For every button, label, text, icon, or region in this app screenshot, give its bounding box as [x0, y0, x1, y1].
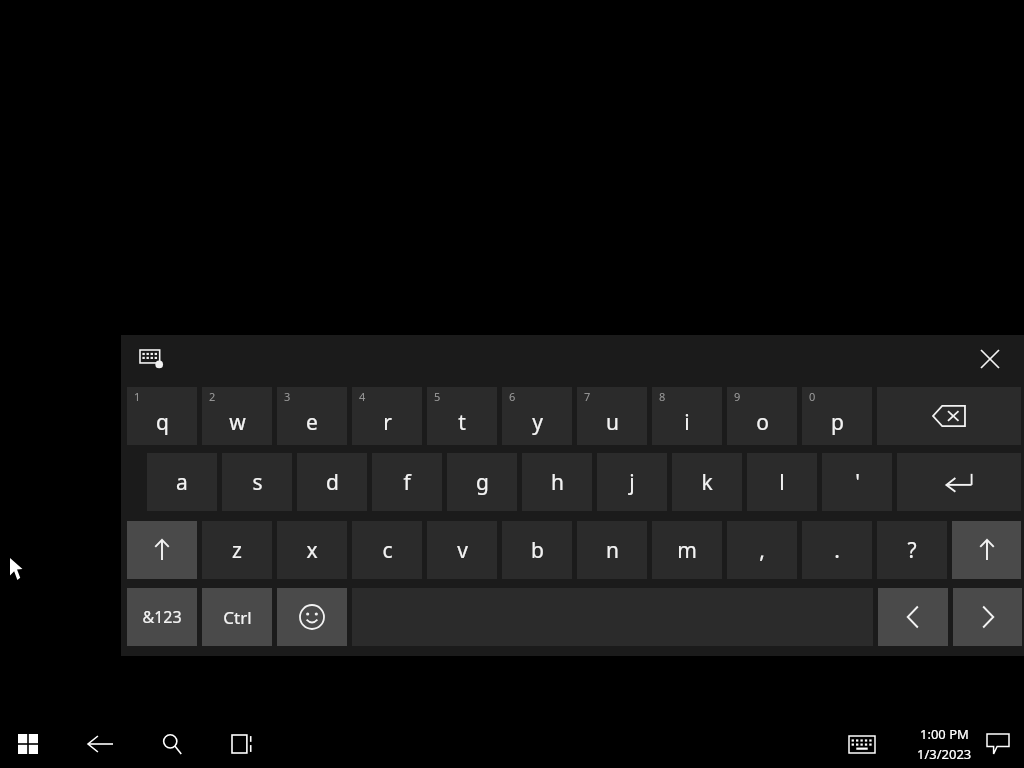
staticText: z: [232, 536, 242, 565]
staticText: h: [551, 468, 564, 497]
button[interactable]: n: [577, 521, 647, 579]
staticText: s: [252, 468, 263, 497]
staticText: 2: [209, 389, 216, 404]
staticText: 1:00 PM: [920, 725, 969, 743]
staticText: 9: [734, 389, 741, 404]
staticText: ,: [759, 536, 765, 565]
button[interactable]: 9: [727, 387, 797, 445]
staticText: d: [326, 468, 339, 497]
staticText: 7: [584, 389, 591, 404]
button[interactable]: b: [502, 521, 572, 579]
staticText: Ctrl: [223, 606, 252, 629]
button[interactable]: Enter: [897, 453, 1021, 511]
button[interactable]: Action center: [978, 720, 1018, 768]
button[interactable]: Left: [878, 588, 948, 646]
button[interactable]: 1: [127, 387, 197, 445]
staticText: n: [606, 536, 619, 565]
button[interactable]: .: [802, 521, 872, 579]
staticText: 4: [359, 389, 366, 404]
button[interactable]: &123: [127, 588, 197, 646]
staticText: i: [684, 408, 690, 437]
staticText: p: [831, 408, 844, 437]
staticText: ?: [907, 536, 917, 565]
staticText: e: [306, 408, 318, 437]
staticText: f: [403, 468, 411, 497]
staticText: k: [701, 468, 713, 497]
button[interactable]: ?: [877, 521, 947, 579]
staticText: l: [779, 468, 785, 497]
staticText: 5: [434, 389, 441, 404]
button[interactable]: g: [447, 453, 517, 511]
button[interactable]: 2: [202, 387, 272, 445]
button[interactable]: Keyboard settings: [135, 342, 169, 376]
staticText: w: [229, 408, 246, 437]
button[interactable]: 3: [277, 387, 347, 445]
button[interactable]: ,: [727, 521, 797, 579]
staticText: 1/3/2023: [917, 745, 972, 763]
button[interactable]: Shift: [952, 521, 1021, 579]
staticText: .: [834, 536, 840, 565]
staticText: x: [306, 536, 318, 565]
button[interactable]: z: [202, 521, 272, 579]
staticText: m: [677, 536, 697, 565]
button[interactable]: d: [297, 453, 367, 511]
button[interactable]: a: [147, 453, 217, 511]
button[interactable]: Clock: [917, 725, 972, 763]
staticText: a: [176, 468, 188, 497]
staticText: g: [476, 468, 489, 497]
button[interactable]: ': [822, 453, 892, 511]
button[interactable]: 7: [577, 387, 647, 445]
button[interactable]: 0: [802, 387, 872, 445]
button[interactable]: 8: [652, 387, 722, 445]
button[interactable]: Emoji: [277, 588, 347, 646]
button[interactable]: 5: [427, 387, 497, 445]
staticText: y: [532, 408, 543, 437]
button[interactable]: Task view: [222, 720, 266, 768]
staticText: v: [457, 536, 468, 565]
staticText: q: [156, 408, 169, 437]
staticText: 3: [284, 389, 291, 404]
staticText: 1: [134, 389, 141, 404]
button[interactable]: 6: [502, 387, 572, 445]
staticText: o: [756, 408, 769, 437]
button[interactable]: Touch keyboard: [842, 720, 882, 768]
button[interactable]: Close keyboard: [970, 339, 1010, 379]
staticText: t: [458, 408, 466, 437]
button[interactable]: Back: [78, 720, 122, 768]
button[interactable]: f: [372, 453, 442, 511]
button[interactable]: Shift: [127, 521, 197, 579]
button[interactable]: v: [427, 521, 497, 579]
button[interactable]: Start: [6, 720, 50, 768]
button[interactable]: l: [747, 453, 817, 511]
staticText: c: [382, 536, 393, 565]
staticText: 0: [809, 389, 816, 404]
button[interactable]: Ctrl: [202, 588, 272, 646]
staticText: ': [855, 468, 860, 497]
button[interactable]: h: [522, 453, 592, 511]
button[interactable]: c: [352, 521, 422, 579]
button[interactable]: j: [597, 453, 667, 511]
button[interactable]: 4: [352, 387, 422, 445]
staticText: &123: [142, 606, 182, 628]
button[interactable]: Right: [953, 588, 1022, 646]
staticText: 6: [509, 389, 516, 404]
staticText: r: [383, 408, 392, 437]
staticText: u: [606, 408, 619, 437]
button[interactable]: Backspace: [877, 387, 1021, 445]
button[interactable]: s: [222, 453, 292, 511]
button[interactable]: k: [672, 453, 742, 511]
staticText: b: [531, 536, 544, 565]
button[interactable]: Search: [150, 720, 194, 768]
staticText: 8: [659, 389, 666, 404]
button[interactable]: m: [652, 521, 722, 579]
button[interactable]: x: [277, 521, 347, 579]
staticText: j: [629, 468, 635, 497]
